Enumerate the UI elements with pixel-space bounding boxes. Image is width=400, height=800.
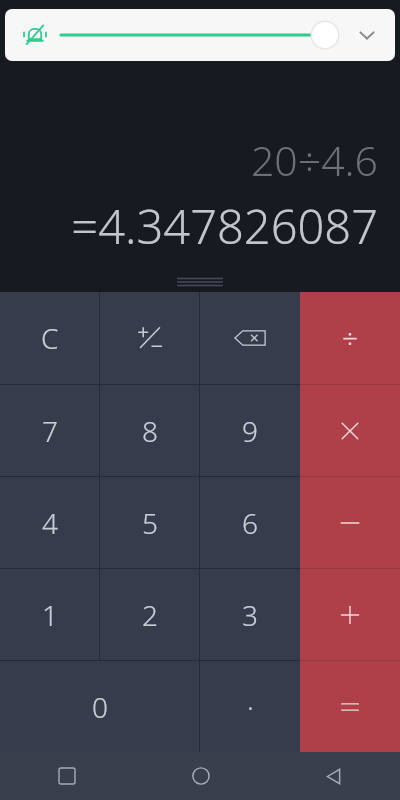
staticText: 9 <box>242 412 258 450</box>
staticText: 20÷4.6 <box>250 132 378 188</box>
staticText: 6 <box>242 504 258 542</box>
staticText: 7 <box>42 412 58 450</box>
staticText: · <box>247 688 254 726</box>
staticText: 5 <box>142 504 158 542</box>
button[interactable]: C <box>0 292 99 384</box>
button[interactable]: Divide <box>300 292 400 384</box>
button[interactable]: 8 <box>100 385 199 476</box>
staticText: 3 <box>242 596 258 634</box>
staticText: 1 <box>42 596 58 634</box>
button[interactable]: 5 <box>100 477 199 568</box>
button[interactable]: Home <box>134 752 267 800</box>
staticText: C <box>41 319 59 357</box>
staticText: 2 <box>142 596 158 634</box>
button[interactable]: Backspace <box>200 292 300 384</box>
button[interactable]: 2 <box>100 569 199 660</box>
button[interactable]: Minus <box>300 477 400 568</box>
button[interactable]: Multiply <box>300 385 400 476</box>
staticText: ÷ <box>342 319 358 357</box>
staticText: =4.347826087 <box>71 194 378 258</box>
button[interactable]: 1 <box>0 569 99 660</box>
button[interactable]: 3 <box>200 569 300 660</box>
button[interactable]: 4 <box>0 477 99 568</box>
button[interactable]: Equals <box>300 661 400 752</box>
button[interactable]: 6 <box>200 477 300 568</box>
button[interactable]: 0 <box>0 661 199 752</box>
button[interactable]: Ringer muted <box>19 19 51 51</box>
staticText: 8 <box>142 412 158 450</box>
button[interactable] <box>61 18 339 52</box>
button[interactable]: Decimal point <box>200 661 300 752</box>
button[interactable]: Recents <box>0 752 134 800</box>
button[interactable]: Back <box>267 752 400 800</box>
button[interactable]: 7 <box>0 385 99 476</box>
button[interactable]: Expand volume controls <box>353 21 381 49</box>
button[interactable]: 9 <box>200 385 300 476</box>
button[interactable]: Plus <box>300 569 400 660</box>
button[interactable]: Expand history <box>177 275 223 289</box>
button[interactable]: Plus minus <box>100 292 199 384</box>
staticText: 4 <box>42 504 58 542</box>
staticText: 0 <box>92 688 108 726</box>
